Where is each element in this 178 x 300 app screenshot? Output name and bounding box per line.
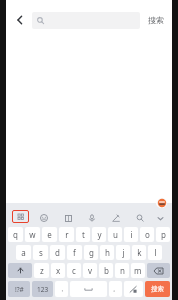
staticText: o: [145, 229, 150, 240]
button[interactable]: Shift: [8, 263, 32, 278]
staticText: b: [104, 265, 109, 276]
staticText: i: [130, 229, 133, 240]
button[interactable]: Period: [109, 281, 122, 297]
staticText: l: [154, 247, 157, 258]
staticText: 。: [113, 285, 119, 293]
button[interactable]: r: [59, 227, 74, 242]
button[interactable]: Voice: [80, 214, 104, 222]
staticText: h: [105, 247, 110, 258]
staticText: s: [39, 247, 43, 258]
button[interactable]: Clipboard: [56, 215, 80, 222]
button[interactable]: 搜索: [146, 12, 166, 28]
button[interactable]: [32, 12, 140, 29]
button[interactable]: i: [124, 227, 138, 242]
staticText: ，: [59, 285, 65, 293]
button[interactable]: Space: [70, 281, 107, 297]
button[interactable]: Comma: [55, 281, 68, 297]
button[interactable]: Back: [12, 12, 28, 28]
staticText: u: [113, 229, 118, 240]
staticText: q: [13, 229, 18, 240]
staticText: j: [122, 247, 125, 258]
staticText: m: [134, 265, 142, 276]
button[interactable]: o: [140, 227, 154, 242]
button[interactable]: s: [33, 245, 48, 260]
staticText: z: [40, 265, 44, 276]
staticText: v: [88, 265, 93, 276]
button[interactable]: v: [83, 263, 97, 278]
button[interactable]: n: [115, 263, 129, 278]
staticText: c: [72, 265, 76, 276]
button[interactable]: 搜索: [145, 281, 170, 297]
staticText: a: [21, 247, 26, 258]
button[interactable]: t: [76, 227, 90, 242]
button[interactable]: f: [67, 245, 82, 260]
staticText: n: [120, 265, 125, 276]
button[interactable]: j: [116, 245, 130, 260]
staticText: 123: [37, 285, 49, 294]
staticText: r: [65, 229, 69, 240]
button[interactable]: Theme: [156, 197, 167, 208]
button[interactable]: h: [100, 245, 114, 260]
staticText: 搜索: [148, 15, 164, 25]
staticText: f: [73, 247, 76, 258]
button[interactable]: Switch language: [124, 281, 143, 297]
staticText: e: [47, 229, 52, 240]
button[interactable]: Search tool: [128, 214, 152, 222]
button[interactable]: d: [50, 245, 65, 260]
button[interactable]: Handwriting: [104, 214, 128, 222]
button[interactable]: b: [99, 263, 113, 278]
button[interactable]: 123: [32, 281, 53, 297]
button[interactable]: m: [131, 263, 145, 278]
staticText: t: [82, 229, 85, 240]
button[interactable]: a: [16, 245, 31, 260]
button[interactable]: z: [34, 263, 49, 278]
staticText: !?#: [15, 285, 24, 294]
button[interactable]: e: [42, 227, 57, 242]
staticText: w: [29, 229, 36, 240]
button[interactable]: q: [8, 227, 23, 242]
staticText: y: [97, 229, 102, 240]
staticText: k: [137, 247, 142, 258]
staticText: x: [56, 265, 61, 276]
staticText: p: [161, 229, 166, 240]
button[interactable]: g: [84, 245, 98, 260]
button[interactable]: l: [148, 245, 162, 260]
button[interactable]: w: [25, 227, 40, 242]
button[interactable]: p: [156, 227, 170, 242]
button[interactable]: Collapse: [152, 215, 169, 222]
staticText: g: [89, 247, 94, 258]
button[interactable]: y: [92, 227, 106, 242]
button[interactable]: u: [108, 227, 122, 242]
button[interactable]: c: [67, 263, 81, 278]
button[interactable]: k: [132, 245, 146, 260]
button[interactable]: !?#: [8, 281, 30, 297]
button[interactable]: x: [51, 263, 65, 278]
staticText: 搜索: [151, 285, 164, 293]
button[interactable]: Input settings: [12, 210, 29, 223]
staticText: d: [55, 247, 60, 258]
button[interactable]: Delete: [147, 263, 170, 278]
button[interactable]: Emoji: [32, 214, 56, 222]
